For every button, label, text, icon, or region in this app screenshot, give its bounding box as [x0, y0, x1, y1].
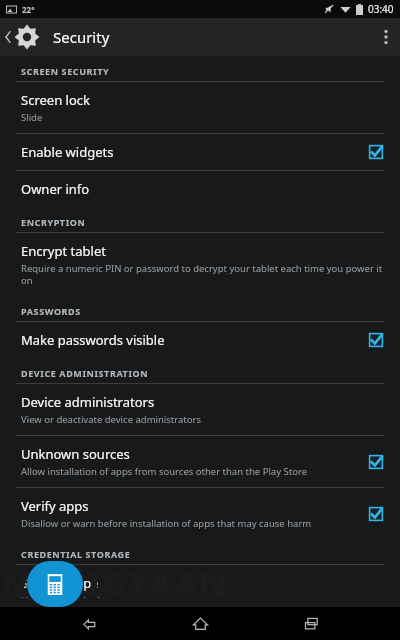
staticText: Disallow or warn before installation of …: [21, 517, 312, 530]
button[interactable]: Enable widgets: [0, 134, 400, 171]
staticText: Screen lock: [21, 91, 90, 109]
staticText: ENCRYPTION: [21, 216, 86, 228]
staticText: Encrypt tablet: [21, 242, 106, 260]
staticText: Verify apps: [21, 497, 89, 515]
staticText: 03:40: [368, 2, 394, 16]
button[interactable]: Back: [67, 607, 111, 640]
staticText: SCREEN SECURITY: [21, 65, 110, 77]
staticText: Unknown sources: [21, 445, 130, 463]
button[interactable]: Verify apps: [0, 488, 400, 539]
staticText: Hardware-backed: [21, 594, 100, 598]
button[interactable]: Navigate up: [0, 20, 42, 54]
button[interactable]: Recent apps: [289, 607, 333, 640]
staticText: CREDENTIAL STORAGE: [21, 548, 131, 560]
staticText: Security: [53, 27, 110, 47]
staticText: Enable widgets: [21, 143, 114, 161]
staticText: Owner info: [21, 180, 90, 198]
staticText: DEVICE ADMINISTRATION: [21, 367, 149, 379]
staticText: Allow installation of apps from sources …: [21, 465, 307, 478]
button[interactable]: Storage type: [0, 565, 400, 607]
button[interactable]: Encrypt tablet: [0, 233, 400, 296]
staticText: Storage type: [21, 574, 99, 592]
staticText: MOBIGYAAN: [2, 561, 228, 607]
staticText: View or deactivate device administrators: [21, 413, 201, 426]
button[interactable]: Unknown sources: [0, 436, 400, 488]
staticText: PASSWORDS: [21, 305, 81, 317]
staticText: Device administrators: [21, 393, 155, 411]
button[interactable]: Make passwords visible: [0, 322, 400, 358]
staticText: Make passwords visible: [21, 331, 165, 349]
button[interactable]: Screen lock: [0, 82, 400, 134]
button[interactable]: Device administrators: [0, 384, 400, 436]
staticText: Slide: [21, 111, 43, 124]
button[interactable]: Owner info: [0, 171, 400, 207]
button[interactable]: More options: [372, 21, 400, 53]
staticText: 22°: [22, 4, 35, 15]
staticText: Require a numeric PIN or password to dec…: [21, 262, 384, 287]
button[interactable]: Home: [178, 607, 222, 640]
